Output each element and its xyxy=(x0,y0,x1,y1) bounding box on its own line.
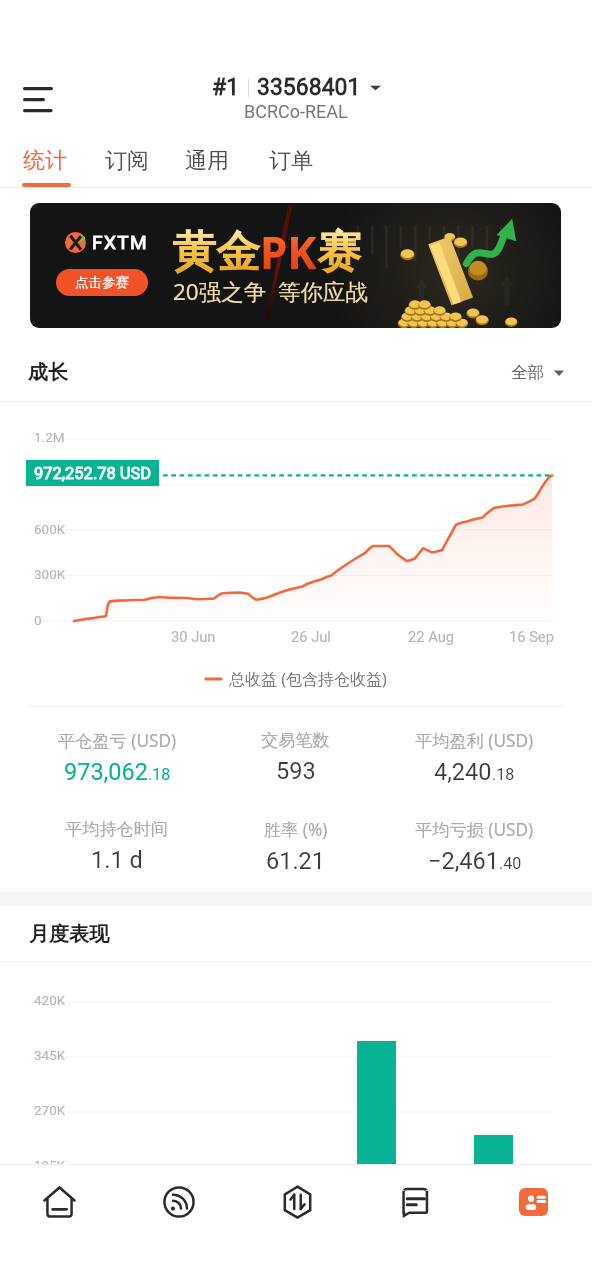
staticText: 973,062 xyxy=(64,758,148,786)
button[interactable]: Trade xyxy=(238,1165,356,1239)
staticText: 16 Sep xyxy=(509,628,554,645)
button[interactable]: 全部 xyxy=(511,362,564,383)
staticText: 赛 xyxy=(317,225,361,280)
staticText: 30 Jun xyxy=(171,628,216,645)
staticText: 1.1 d xyxy=(91,846,143,874)
staticText: PK xyxy=(260,222,317,282)
staticText: 平均盈利 (USD) xyxy=(415,729,534,752)
staticText: .18 xyxy=(492,765,515,784)
staticText: #1 xyxy=(212,74,240,101)
staticText: 平仓盈亏 (USD) xyxy=(58,729,177,752)
staticText: 0 xyxy=(34,612,42,628)
staticText: 月度表现 xyxy=(29,922,109,947)
staticText: FXTM xyxy=(92,231,148,253)
button[interactable]: Menu xyxy=(1,77,73,121)
staticText: 平均亏损 (USD) xyxy=(415,818,534,841)
staticText: 22 Aug xyxy=(408,628,454,645)
staticText: 平均持仓时间 xyxy=(65,818,169,840)
button[interactable]: 订单 xyxy=(257,138,325,184)
button[interactable]: 点击参赛 xyxy=(56,269,148,296)
staticText: 成长 xyxy=(28,360,68,385)
staticText: 270K xyxy=(34,1102,66,1118)
button[interactable]: 统计 xyxy=(11,138,79,184)
staticText: 600K xyxy=(34,521,66,537)
staticText: 345K xyxy=(34,1047,66,1063)
staticText: BCRCo-REAL xyxy=(244,101,348,122)
staticText: 195K xyxy=(34,1157,66,1165)
staticText: 订阅 xyxy=(105,147,149,175)
staticText: 26 Jul xyxy=(291,628,331,645)
button[interactable]: Home xyxy=(0,1165,119,1239)
staticText: 通用 xyxy=(185,147,229,175)
staticText: 1.2M xyxy=(34,429,65,445)
staticText: .18 xyxy=(148,765,171,784)
staticText: 420K xyxy=(34,992,66,1008)
button[interactable]: Profile xyxy=(474,1165,592,1239)
staticText: 20强之争 等你应战 xyxy=(173,276,368,307)
staticText: .40 xyxy=(499,854,522,873)
staticText: 胜率 (%) xyxy=(264,818,328,841)
button[interactable]: FXTM xyxy=(30,203,561,328)
staticText: 300K xyxy=(34,566,66,582)
button[interactable]: #1 xyxy=(0,74,592,122)
button[interactable]: Signals xyxy=(119,1165,238,1239)
button[interactable]: 订阅 xyxy=(93,138,161,184)
staticText: 33568401 xyxy=(257,74,361,101)
staticText: 总收益 (包含持仓收益) xyxy=(229,668,387,690)
staticText: 972,252.78 USD xyxy=(34,464,152,483)
button[interactable]: 通用 xyxy=(173,138,241,184)
staticText: 黄金 xyxy=(172,225,260,280)
staticText: 点击参赛 xyxy=(75,274,129,291)
staticText: 订单 xyxy=(269,147,313,175)
staticText: 4,240 xyxy=(434,758,492,786)
staticText: 593 xyxy=(276,757,316,785)
staticText: 61.21 xyxy=(266,847,326,875)
staticText: 统计 xyxy=(23,147,67,175)
staticText: 交易笔数 xyxy=(261,729,330,751)
button[interactable]: Messages xyxy=(356,1165,474,1239)
staticText: 全部 xyxy=(511,362,545,383)
staticText: −2,461 xyxy=(428,847,499,875)
